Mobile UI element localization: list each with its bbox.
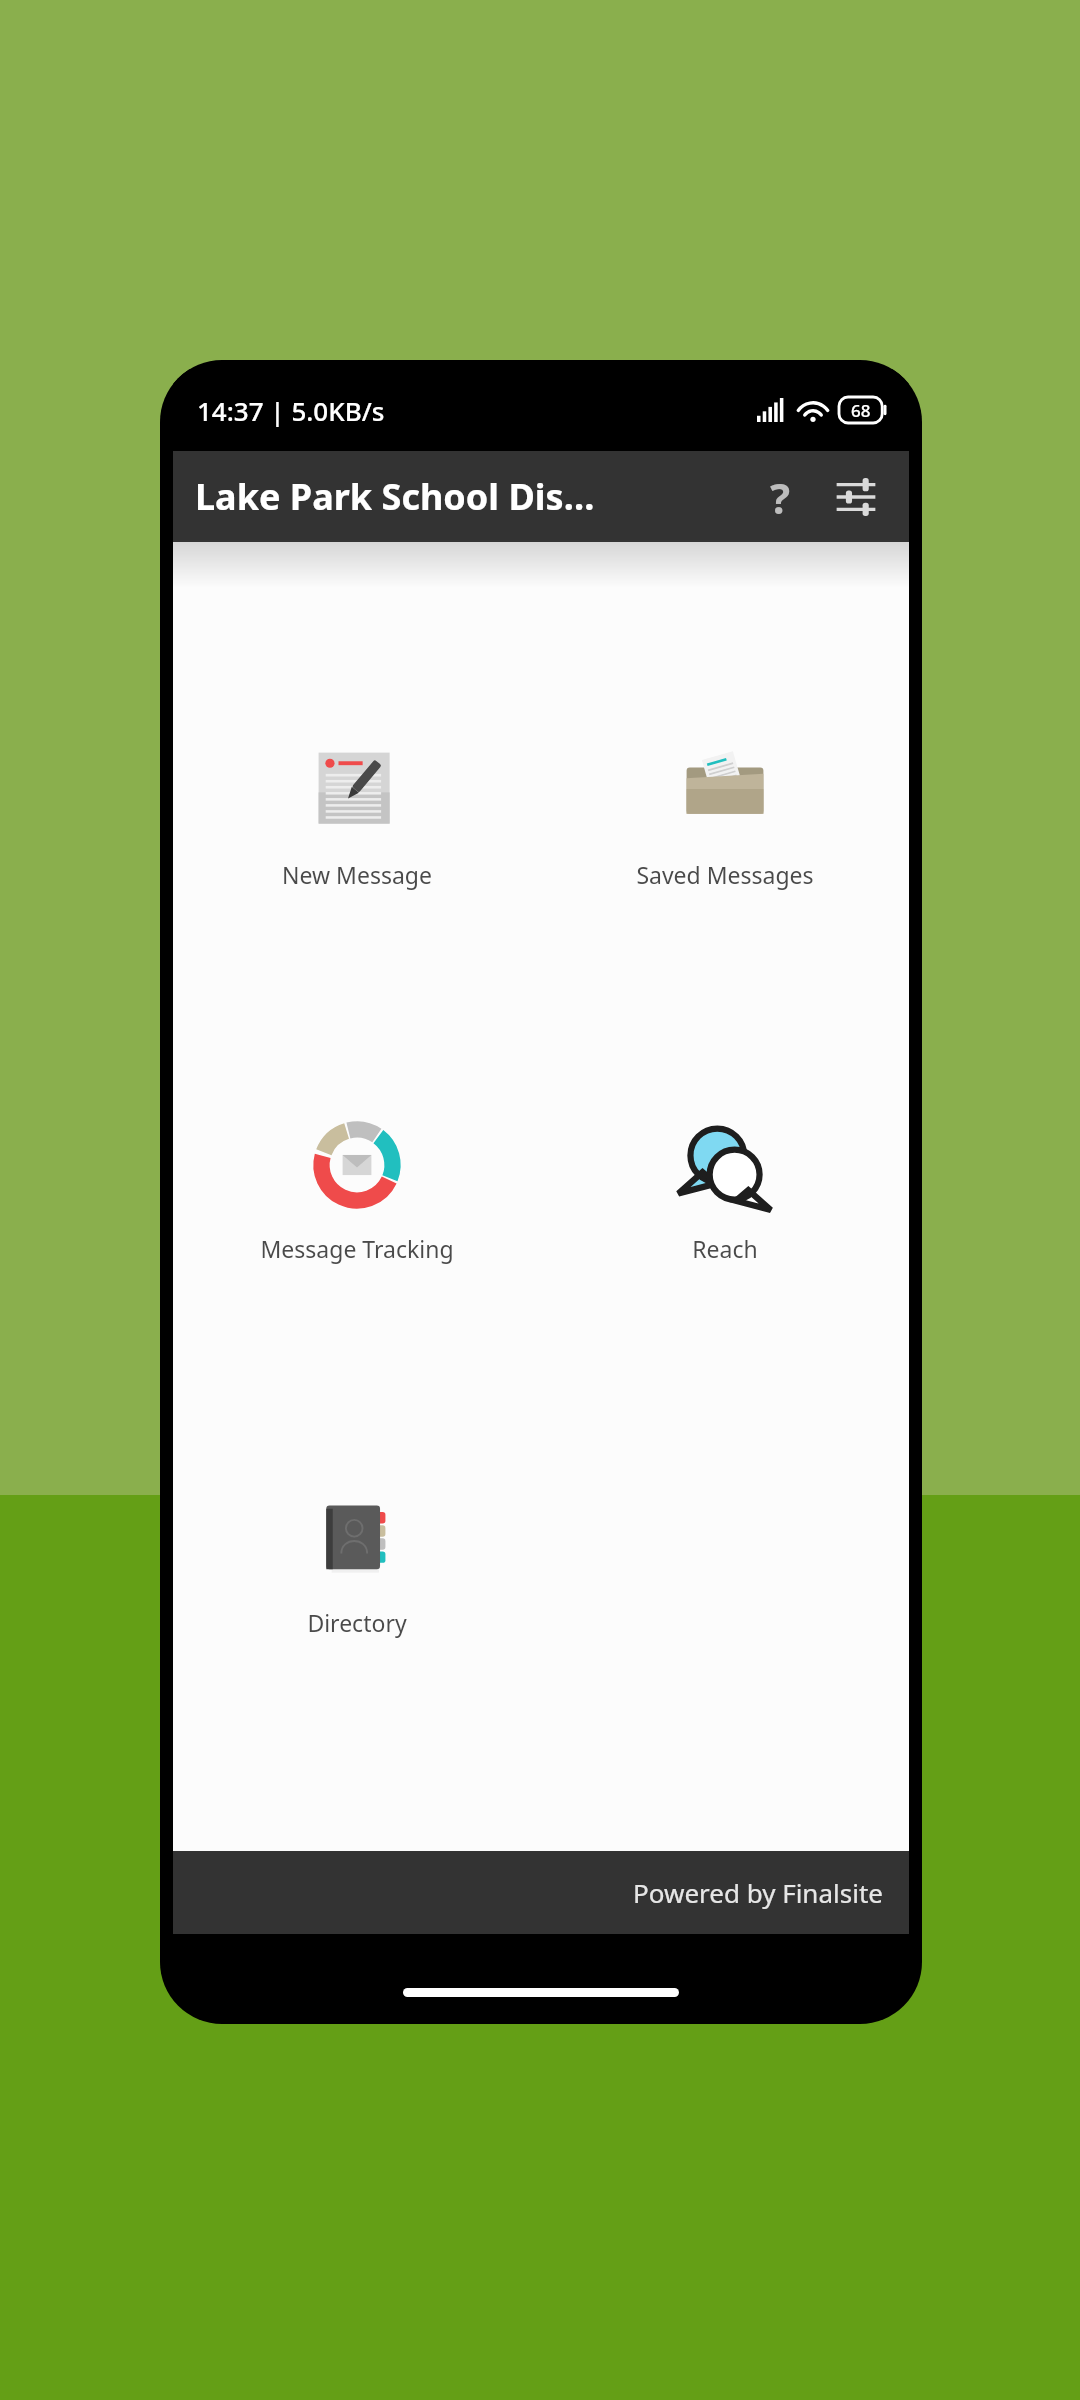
staticText: Lake Park School Dis… (195, 472, 595, 521)
button[interactable]: Message Tracking (173, 1111, 541, 1270)
staticText: 68 (851, 399, 871, 422)
button[interactable]: Settings (825, 466, 887, 528)
staticText: Saved Messages (636, 859, 814, 890)
staticText: Powered by Finalsite (633, 1875, 883, 1910)
button[interactable]: Help (749, 466, 811, 528)
button[interactable]: New Message (173, 737, 541, 896)
staticText: Directory (307, 1607, 407, 1638)
staticText: New Message (282, 859, 432, 890)
staticText: Reach (692, 1233, 758, 1264)
button[interactable]: Saved Messages (541, 737, 909, 896)
staticText: ? (770, 469, 791, 526)
button[interactable]: Reach (541, 1111, 909, 1270)
staticText: 14:37 | 5.0KB/s (197, 393, 385, 428)
staticText: Message Tracking (260, 1233, 454, 1264)
button[interactable]: Directory (173, 1485, 541, 1644)
